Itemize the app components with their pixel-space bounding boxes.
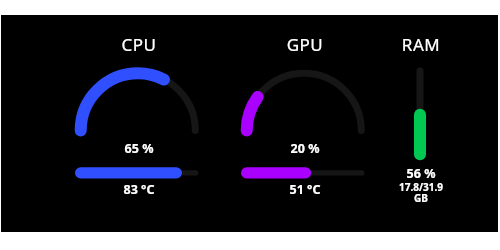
staticText: GB [377, 191, 465, 205]
staticText: 65 % [68, 140, 210, 157]
staticText: 83 °C [68, 181, 210, 198]
staticText: 51 °C [234, 181, 376, 198]
button[interactable]: RAM 56 %, 17.8 of 31.9 GB used [376, 30, 464, 200]
staticText: GPU [234, 33, 376, 56]
staticText: 20 % [234, 140, 376, 157]
staticText: RAM [377, 33, 465, 56]
button[interactable]: GPU 20 %, 51 °C [233, 30, 375, 200]
staticText: CPU [68, 33, 210, 56]
staticText: 56 % [377, 165, 465, 182]
staticText: 17.8/31.9 [377, 180, 465, 194]
button[interactable]: CPU 65 %, 83 °C [67, 30, 209, 200]
